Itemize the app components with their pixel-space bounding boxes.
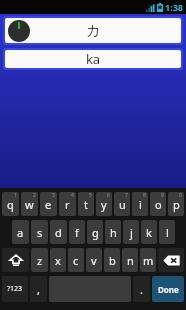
staticText: m (143, 253, 154, 268)
button[interactable]: f (69, 220, 85, 244)
button[interactable]: l (159, 220, 175, 244)
staticText: j (130, 225, 133, 240)
button[interactable]: Done (152, 276, 184, 302)
button[interactable]: q (2, 192, 19, 216)
staticText: v (91, 253, 97, 268)
staticText: 6 (107, 192, 110, 199)
staticText: l (166, 225, 169, 240)
staticText: u (119, 197, 126, 212)
staticText: 9 (161, 192, 164, 199)
staticText: 3 (52, 192, 55, 199)
button[interactable]: d (50, 220, 67, 244)
button[interactable]: n (122, 248, 138, 272)
staticText: a (17, 225, 24, 240)
button[interactable]: k (141, 220, 157, 244)
staticText: 0 (179, 192, 182, 199)
staticText: Done (158, 284, 179, 295)
button[interactable]: a (12, 220, 29, 244)
staticText: o (155, 197, 162, 212)
staticText: h (110, 225, 117, 240)
staticText: z (37, 253, 43, 268)
button[interactable]: y (96, 192, 112, 216)
button[interactable]: p (168, 192, 184, 216)
button[interactable]: x (50, 248, 66, 272)
staticText: x (55, 253, 61, 268)
button[interactable]: ?123 (2, 276, 28, 302)
staticText: s (37, 225, 43, 240)
button[interactable]: b (104, 248, 120, 272)
button[interactable]: ka (5, 50, 181, 68)
staticText: 1 (14, 192, 17, 199)
staticText: n (127, 253, 134, 268)
staticText: b (109, 253, 116, 268)
staticText: p (173, 197, 180, 212)
staticText: g (92, 225, 99, 240)
staticText: d (55, 225, 62, 240)
staticText: カ (86, 22, 101, 40)
button[interactable]: o (150, 192, 166, 216)
button[interactable]: e (40, 192, 57, 216)
button[interactable]: Backspace (158, 248, 184, 272)
button[interactable]: z (31, 248, 48, 272)
staticText: f (75, 225, 79, 240)
staticText: 1:38 (165, 1, 183, 13)
button[interactable]: s (31, 220, 48, 244)
button[interactable]: c (68, 248, 84, 272)
staticText: 7 (125, 192, 128, 199)
button[interactable]: j (123, 220, 139, 244)
staticText: y (101, 197, 107, 212)
button[interactable]: t (78, 192, 94, 216)
button[interactable]: カ (5, 18, 181, 43)
staticText: k (146, 225, 152, 240)
button[interactable]: w (21, 192, 38, 216)
button[interactable]: h (105, 220, 121, 244)
staticText: c (73, 253, 79, 268)
button[interactable]: , (30, 276, 47, 302)
staticText: ?123 (7, 284, 23, 294)
staticText: q (7, 197, 14, 212)
staticText: , (37, 282, 40, 297)
staticText: 4 (71, 192, 74, 199)
button[interactable]: . (133, 276, 150, 302)
staticText: . (140, 282, 143, 297)
button[interactable]: v (86, 248, 102, 272)
button[interactable]: r (59, 192, 76, 216)
button[interactable]: u (114, 192, 130, 216)
staticText: t (84, 197, 88, 212)
staticText: ka (5, 50, 181, 68)
button[interactable]: m (140, 248, 156, 272)
staticText: w (25, 197, 34, 212)
staticText: i (139, 197, 142, 212)
button[interactable]: g (87, 220, 103, 244)
button[interactable]: i (132, 192, 148, 216)
staticText: e (45, 197, 52, 212)
staticText: 8 (143, 192, 146, 199)
button[interactable]: Shift (2, 248, 29, 272)
staticText: 5 (89, 192, 92, 199)
staticText: 2 (33, 192, 36, 199)
staticText: r (65, 197, 70, 212)
